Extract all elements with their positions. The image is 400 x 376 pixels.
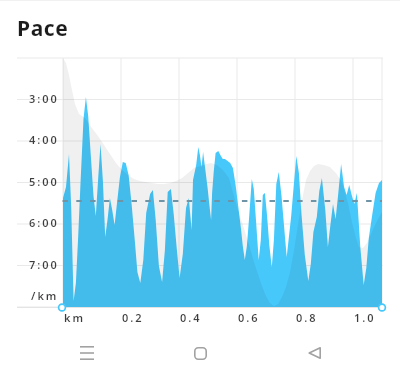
- staticText: Pace: [17, 14, 69, 43]
- staticText: 0.4: [180, 310, 202, 325]
- button[interactable]: Home: [173, 330, 227, 376]
- staticText: 1.0: [354, 310, 376, 325]
- button[interactable]: Recent apps: [60, 330, 114, 376]
- staticText: /km: [31, 288, 59, 303]
- button[interactable]: Back: [287, 330, 341, 376]
- staticText: 7:00: [29, 257, 59, 272]
- staticText: 5:00: [29, 174, 59, 189]
- staticText: 0.8: [296, 310, 318, 325]
- staticText: 0.6: [238, 310, 260, 325]
- staticText: 6:00: [29, 215, 59, 230]
- staticText: km: [64, 310, 86, 325]
- staticText: 4:00: [29, 132, 59, 147]
- staticText: 0.2: [122, 310, 144, 325]
- staticText: 3:00: [29, 91, 59, 106]
